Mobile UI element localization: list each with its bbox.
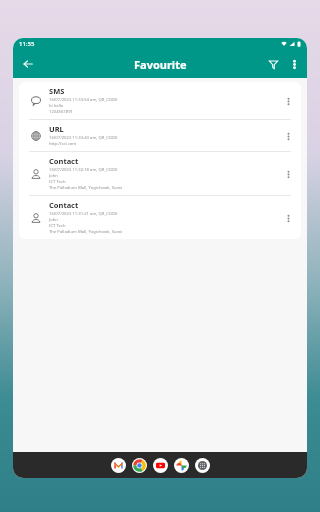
button[interactable]: Item options xyxy=(279,92,297,110)
staticText: Favourite xyxy=(134,57,187,72)
button[interactable]: More options xyxy=(284,54,304,74)
staticText: John xyxy=(49,173,58,179)
button[interactable]: All apps xyxy=(195,458,210,473)
staticText: The Palladium Mall, Yogichowk, Surat xyxy=(49,229,123,235)
button[interactable]: Chrome xyxy=(132,458,147,473)
staticText: URL xyxy=(49,124,64,134)
button[interactable]: Contact xyxy=(19,152,301,195)
staticText: 16/07/2023 11:32:18 am, QR_CODE xyxy=(49,167,118,173)
button[interactable]: SMS xyxy=(19,82,301,119)
button[interactable]: YouTube xyxy=(153,458,168,473)
staticText: 16/07/2023 11:33:43 am, QR_CODE xyxy=(49,135,118,141)
button[interactable]: Gmail xyxy=(111,458,126,473)
staticText: ICT Tech xyxy=(49,223,66,229)
staticText: http://ccl.com xyxy=(49,141,77,147)
staticText: ICT Tech xyxy=(49,179,66,185)
button[interactable]: Item options xyxy=(279,127,297,145)
staticText: hi hello xyxy=(49,103,64,109)
staticText: 11:55 xyxy=(19,40,35,48)
button[interactable]: Filter xyxy=(262,53,284,75)
button[interactable]: Contact xyxy=(19,196,301,239)
staticText: SMS xyxy=(49,86,65,96)
staticText: John xyxy=(49,217,58,223)
staticText: Contact xyxy=(49,200,79,210)
button[interactable]: Item options xyxy=(279,165,297,183)
button[interactable]: URL xyxy=(19,120,301,151)
staticText: The Palladium Mall, Yogichowk, Surat xyxy=(49,185,123,191)
staticText: 1234567891 xyxy=(49,109,73,115)
staticText: 16/07/2023 11:33:54 am, QR_CODE xyxy=(49,97,118,103)
button[interactable]: Photos xyxy=(174,458,189,473)
button[interactable]: Back xyxy=(17,53,39,75)
staticText: 16/07/2023 11:31:21 am, QR_CODE xyxy=(49,211,118,217)
staticText: Contact xyxy=(49,156,79,166)
button[interactable]: Item options xyxy=(279,209,297,227)
